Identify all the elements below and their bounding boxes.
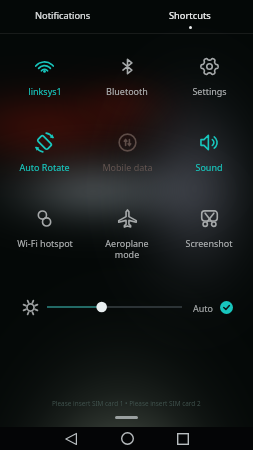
button[interactable]: Wi-Fi hotspot bbox=[3, 209, 86, 249]
staticText: Bluetooth bbox=[106, 85, 148, 97]
staticText: Sound bbox=[195, 161, 223, 173]
button[interactable]: Auto bbox=[193, 301, 233, 314]
button[interactable]: Screenshot bbox=[168, 209, 250, 249]
staticText: Wi-Fi hotspot bbox=[17, 237, 73, 249]
button[interactable]: Sound bbox=[168, 133, 250, 173]
button[interactable] bbox=[47, 299, 182, 315]
button[interactable]: Auto Rotate bbox=[3, 133, 86, 173]
button[interactable]: Settings bbox=[168, 57, 250, 97]
staticText: Shortcuts bbox=[169, 9, 211, 22]
button[interactable]: Mobile data bbox=[86, 133, 168, 173]
staticText: Screenshot bbox=[185, 237, 233, 249]
staticText: Please insert SIM card 1 • Please insert… bbox=[52, 399, 201, 408]
button[interactable]: Recent apps bbox=[168, 427, 198, 450]
button[interactable]: Bluetooth bbox=[86, 57, 168, 97]
staticText: Auto bbox=[193, 302, 214, 314]
staticText: Aeroplane mode bbox=[105, 237, 149, 261]
button[interactable]: Aeroplane mode bbox=[86, 209, 168, 261]
staticText: Notifications bbox=[35, 9, 91, 22]
staticText: Mobile data bbox=[102, 161, 153, 173]
staticText: Auto Rotate bbox=[19, 161, 70, 173]
staticText: linksys1 bbox=[28, 85, 62, 97]
button[interactable]: linksys1 bbox=[3, 57, 86, 97]
button[interactable]: Back bbox=[56, 427, 86, 450]
button[interactable]: Home bbox=[112, 427, 142, 450]
staticText: Settings bbox=[192, 85, 227, 97]
button[interactable]: Shortcuts bbox=[126, 0, 253, 34]
button[interactable]: Notifications bbox=[0, 0, 126, 34]
